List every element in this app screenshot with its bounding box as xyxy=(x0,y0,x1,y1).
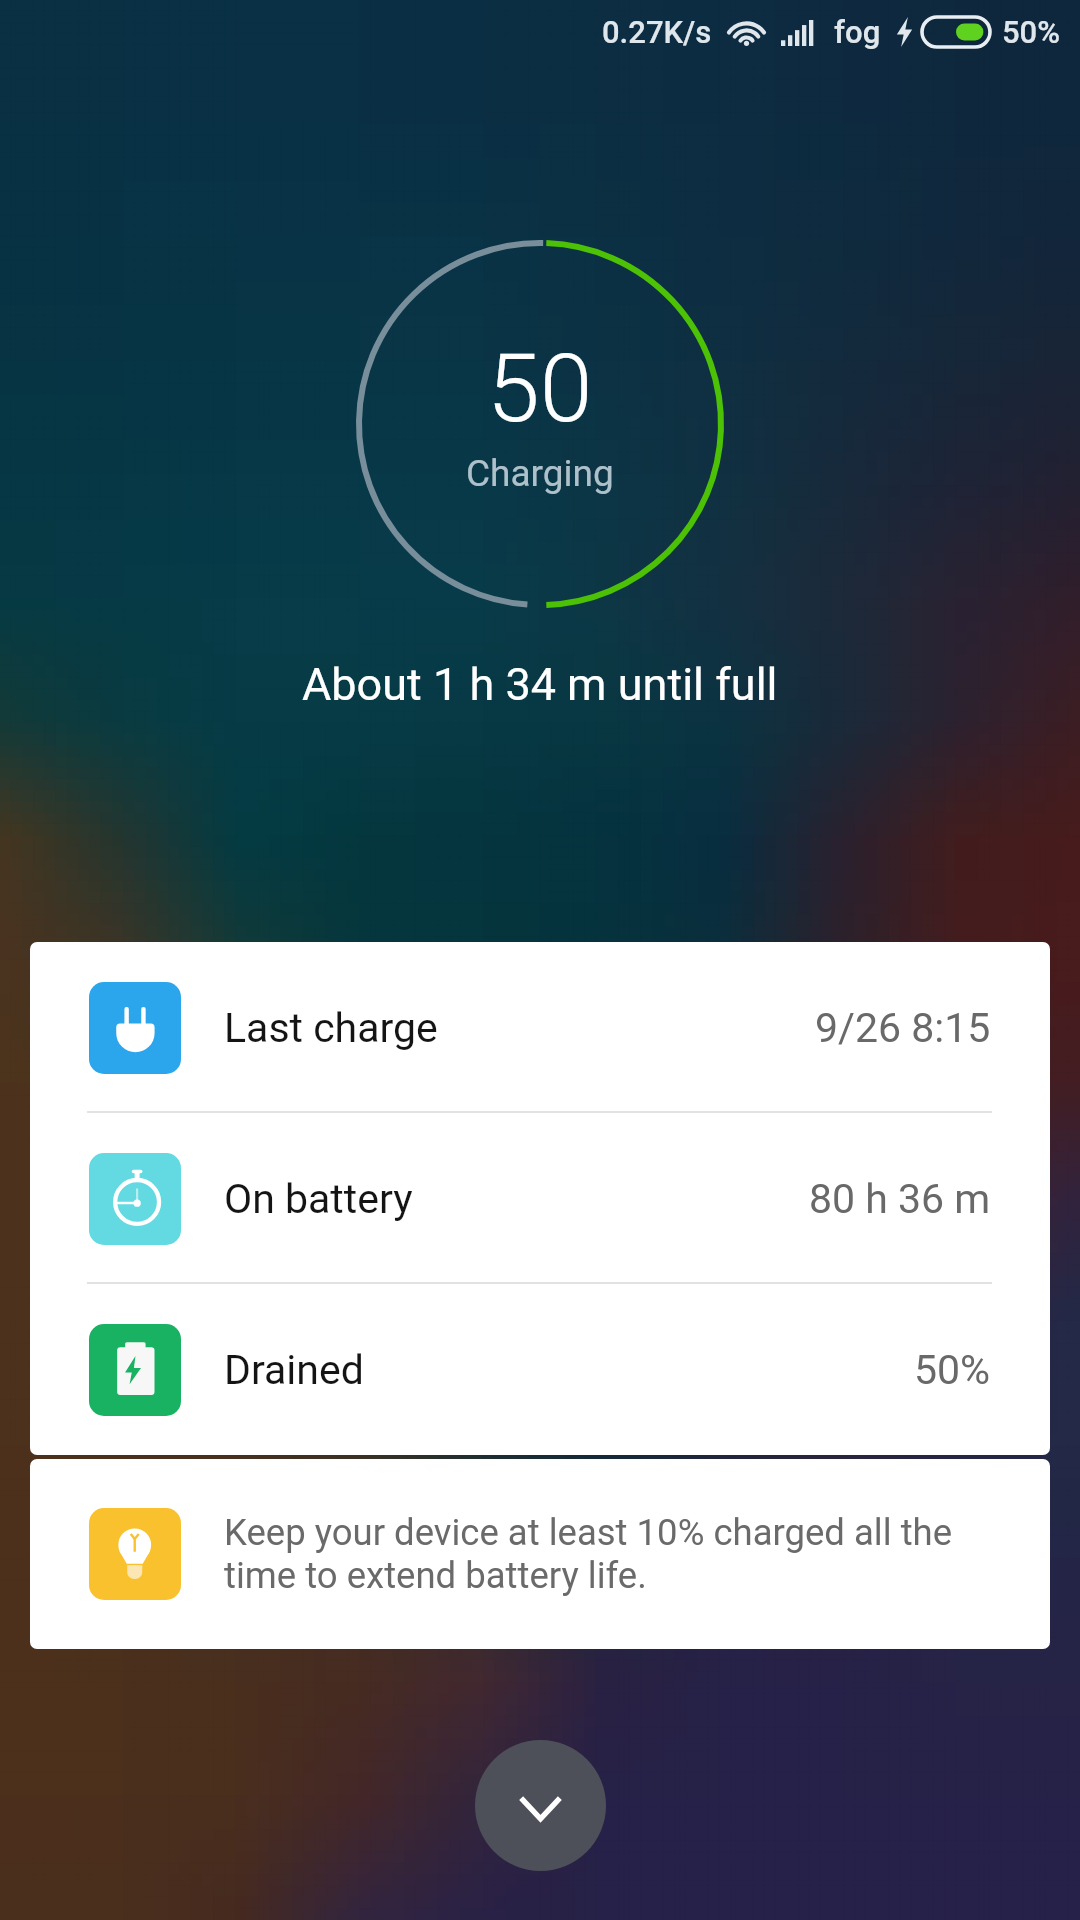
staticText: 50% xyxy=(1002,14,1061,50)
staticText: Keep your device at least 10% charged al… xyxy=(224,1511,991,1597)
staticText: About 1 h 34 m until full xyxy=(302,658,778,711)
staticText: 50% xyxy=(914,1346,991,1394)
staticText: 9/26 8:15 xyxy=(815,1004,991,1052)
staticText: 50 xyxy=(487,333,593,444)
staticText: On battery xyxy=(224,1175,413,1223)
button[interactable]: Drained xyxy=(30,1284,1050,1455)
button[interactable]: Collapse xyxy=(475,1740,606,1871)
staticText: Drained xyxy=(224,1346,364,1394)
button[interactable]: On battery xyxy=(30,1113,1050,1284)
staticText: Last charge xyxy=(224,1004,438,1052)
button[interactable]: Last charge xyxy=(30,942,1050,1113)
staticText: Charging xyxy=(466,452,614,495)
staticText: 80 h 36 m xyxy=(809,1175,991,1223)
staticText: 0.27K/s xyxy=(602,14,712,50)
staticText: fog xyxy=(834,14,881,50)
button[interactable]: Keep your device at least 10% charged al… xyxy=(30,1459,1050,1649)
